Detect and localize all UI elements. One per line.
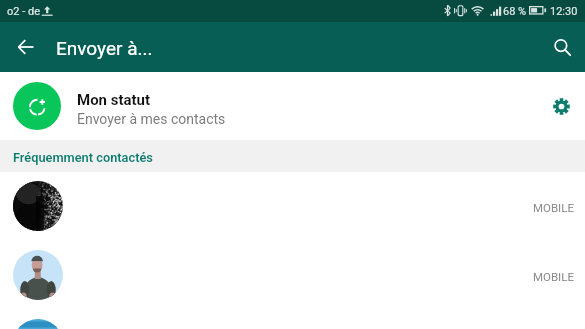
staticText: Envoyer à...	[56, 37, 153, 59]
button[interactable]: Contact 2, MOBILE	[0, 241, 585, 310]
staticText: Mon statut	[77, 91, 151, 109]
button[interactable]: Settings	[541, 86, 581, 126]
button[interactable]: Contact 1, MOBILE	[0, 172, 585, 241]
staticText: Fréquemment contactés	[13, 150, 153, 165]
staticText: Envoyer à mes contacts	[77, 111, 226, 127]
staticText: o2 - de	[7, 5, 40, 18]
button[interactable]: Contact 3, MOBILE	[0, 310, 585, 329]
staticText: 68 %	[503, 5, 527, 18]
staticText: MOBILE	[533, 270, 574, 283]
staticText: 12:30	[550, 5, 578, 18]
staticText: MOBILE	[533, 201, 574, 214]
button[interactable]: Search	[545, 30, 581, 66]
button[interactable]: Mon statut	[0, 72, 585, 140]
button[interactable]: Back	[10, 31, 42, 63]
